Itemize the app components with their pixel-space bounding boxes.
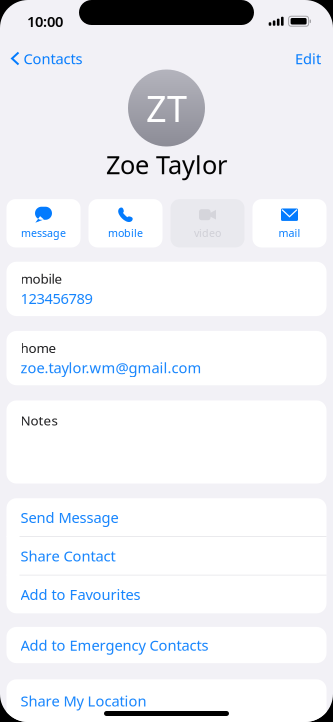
staticText: Contacts [23, 49, 82, 68]
staticText: Zoe Taylor [106, 147, 227, 181]
staticText: Share Contact [20, 546, 115, 566]
staticText: Send Message [20, 507, 118, 527]
button[interactable]: home [6, 331, 326, 385]
button[interactable]: mail [252, 199, 326, 247]
staticText: ZT [146, 84, 187, 132]
staticText: message [21, 226, 66, 240]
staticText: mobile [108, 226, 143, 240]
button[interactable]: Share Contact [6, 537, 326, 575]
button[interactable]: Add to Favourites [6, 575, 326, 613]
staticText: mail [278, 226, 300, 240]
staticText: Notes [20, 411, 57, 429]
staticText: mobile [20, 270, 62, 287]
staticText: Edit [295, 49, 321, 68]
button[interactable]: Contacts [3, 48, 91, 68]
staticText: Share My Location [20, 691, 146, 711]
staticText: video [194, 226, 221, 240]
button[interactable]: mobile [6, 262, 326, 316]
button[interactable]: Notes [6, 400, 326, 483]
button[interactable]: video [170, 199, 244, 247]
staticText: zoe.taylor.wm@gmail.com [20, 358, 201, 377]
staticText: home [20, 339, 56, 357]
button[interactable]: message [6, 199, 80, 247]
staticText: 10:00 [27, 11, 63, 31]
button[interactable]: Add to Emergency Contacts [6, 626, 326, 664]
staticText: 123456789 [20, 288, 92, 308]
button[interactable]: Send Message [6, 498, 326, 536]
staticText: Add to Emergency Contacts [20, 635, 208, 655]
button[interactable]: Share My Location [6, 682, 326, 720]
button[interactable]: mobile [88, 199, 162, 247]
staticText: Add to Favourites [20, 585, 140, 604]
button[interactable]: Edit [286, 48, 330, 68]
